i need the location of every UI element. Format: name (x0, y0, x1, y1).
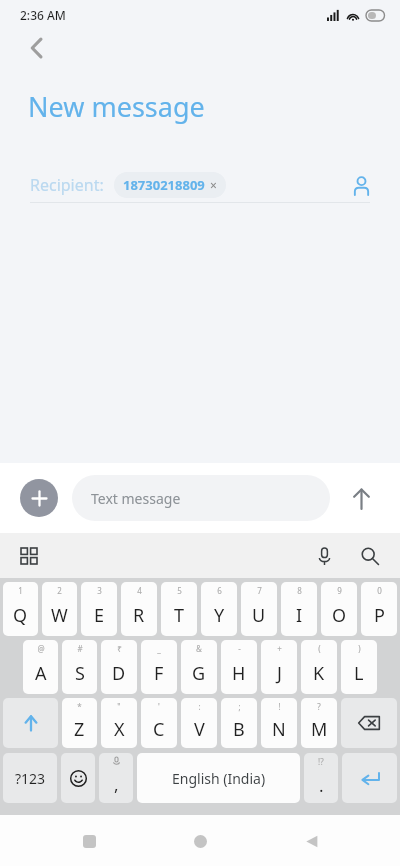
staticText: : (198, 701, 201, 712)
button[interactable]: & (181, 640, 217, 694)
staticText: ₹ (117, 643, 122, 654)
button[interactable]: , (99, 753, 133, 803)
staticText: P (374, 603, 385, 628)
staticText: ! (278, 701, 281, 712)
button[interactable]: 3 (81, 582, 117, 636)
button[interactable]: Search (354, 540, 386, 572)
staticText: . (319, 774, 324, 797)
staticText: R (133, 603, 145, 628)
staticText: D (112, 661, 126, 686)
button[interactable]: Add contact (346, 170, 376, 200)
staticText: 9 (337, 585, 342, 596)
staticText: N (272, 717, 286, 742)
button[interactable]: Back (30, 30, 400, 66)
button[interactable]: " (101, 698, 137, 748)
button[interactable]: Text message (72, 475, 330, 521)
button[interactable]: 6 (201, 582, 237, 636)
staticText: B (233, 717, 245, 742)
staticText: A (35, 661, 47, 686)
staticText: Recipient: (30, 174, 104, 196)
staticText: English (India) (172, 769, 266, 788)
button[interactable]: _ (141, 640, 177, 694)
button[interactable]: 0 (361, 582, 397, 636)
staticText: S (75, 661, 85, 686)
button[interactable]: Recents (67, 819, 111, 863)
staticText: 2 (57, 585, 62, 596)
button[interactable]: Backspace (341, 698, 397, 748)
button[interactable]: 9 (321, 582, 357, 636)
button[interactable]: 5 (161, 582, 197, 636)
staticText: ) (358, 643, 361, 654)
staticText: Q (13, 603, 28, 628)
staticText: F (154, 661, 164, 686)
button[interactable]: ) (341, 640, 377, 694)
staticText: ' (158, 701, 160, 712)
staticText: M (311, 717, 328, 742)
button[interactable]: ? (301, 698, 337, 748)
staticText: Z (74, 717, 85, 742)
staticText: V (194, 717, 205, 742)
button[interactable]: Enter (342, 753, 397, 803)
button[interactable]: ?123 (3, 753, 57, 803)
staticText: L (354, 661, 364, 686)
button[interactable]: ₹ (101, 640, 137, 694)
button[interactable]: 7 (241, 582, 277, 636)
button[interactable]: ; (221, 698, 257, 748)
staticText: & (196, 643, 202, 654)
button[interactable]: 4 (121, 582, 157, 636)
staticText: + (277, 643, 282, 654)
button[interactable]: Attach (20, 479, 58, 517)
button[interactable]: Home (178, 819, 222, 863)
staticText: , (114, 773, 119, 796)
button[interactable]: 8 (281, 582, 317, 636)
staticText: H (232, 661, 246, 686)
staticText: 4 (137, 585, 142, 596)
button[interactable]: ( (301, 640, 337, 694)
staticText: G (192, 661, 206, 686)
staticText: J (277, 661, 282, 686)
staticText: C (153, 717, 165, 742)
button[interactable]: !? (304, 753, 338, 803)
staticText: X (114, 717, 125, 742)
staticText: 6 (217, 585, 222, 596)
staticText: 18730218809 (123, 176, 205, 194)
button[interactable]: ! (261, 698, 297, 748)
staticText: - (238, 643, 241, 654)
button[interactable]: 18730218809 (114, 172, 226, 198)
staticText: ?123 (15, 769, 46, 788)
button[interactable]: + (261, 640, 297, 694)
staticText: Y (214, 603, 225, 628)
staticText: " (117, 701, 121, 712)
staticText: 0 (377, 585, 382, 596)
staticText: New message (28, 88, 205, 125)
button[interactable]: - (221, 640, 257, 694)
button[interactable]: # (62, 640, 97, 694)
staticText: ? (317, 701, 321, 712)
button[interactable]: : (181, 698, 217, 748)
button[interactable]: 2 (42, 582, 77, 636)
staticText: ; (238, 701, 241, 712)
staticText: T (174, 603, 185, 628)
staticText: @ (37, 643, 45, 654)
staticText: 7 (257, 585, 262, 596)
button[interactable]: Emoji (61, 753, 95, 803)
staticText: # (77, 643, 83, 654)
staticText: 2:36 AM (20, 7, 66, 23)
button[interactable]: Keyboard options (14, 541, 44, 571)
staticText: U (252, 603, 266, 628)
button[interactable]: Voice input (308, 540, 340, 572)
staticText: I (296, 603, 303, 628)
button[interactable]: 1 (3, 582, 38, 636)
staticText: _ (157, 643, 161, 654)
button[interactable]: Send (342, 479, 380, 517)
staticText: W (51, 603, 68, 628)
staticText: * (77, 701, 82, 712)
button[interactable]: Back (289, 819, 333, 863)
staticText: 5 (177, 585, 182, 596)
button[interactable]: @ (23, 640, 58, 694)
button[interactable]: ' (141, 698, 177, 748)
button[interactable]: * (62, 698, 97, 748)
button[interactable]: Shift (3, 698, 58, 748)
button[interactable]: English (India) (137, 753, 300, 803)
staticText: Text message (91, 489, 181, 508)
